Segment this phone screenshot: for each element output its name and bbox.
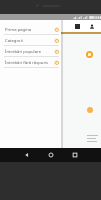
button[interactable]: Home	[39, 148, 63, 162]
button[interactable]: Stop	[73, 22, 82, 31]
staticText: Prima pagina	[5, 27, 54, 33]
staticText: Întrebări populare	[5, 49, 54, 55]
button[interactable]: Întrebări fără răspuns	[0, 57, 61, 68]
button[interactable]: Prima pagina	[0, 24, 61, 35]
staticText: Întrebări fără răspuns	[5, 60, 54, 66]
button[interactable]: Account	[87, 22, 96, 31]
staticText: Categorii	[5, 38, 54, 44]
button[interactable]: Categorii	[0, 35, 61, 46]
button[interactable]: Recents	[63, 148, 87, 162]
button[interactable]: Back	[14, 148, 39, 162]
button[interactable]: Add	[86, 51, 93, 58]
button[interactable]: Întrebări populare	[0, 46, 61, 57]
